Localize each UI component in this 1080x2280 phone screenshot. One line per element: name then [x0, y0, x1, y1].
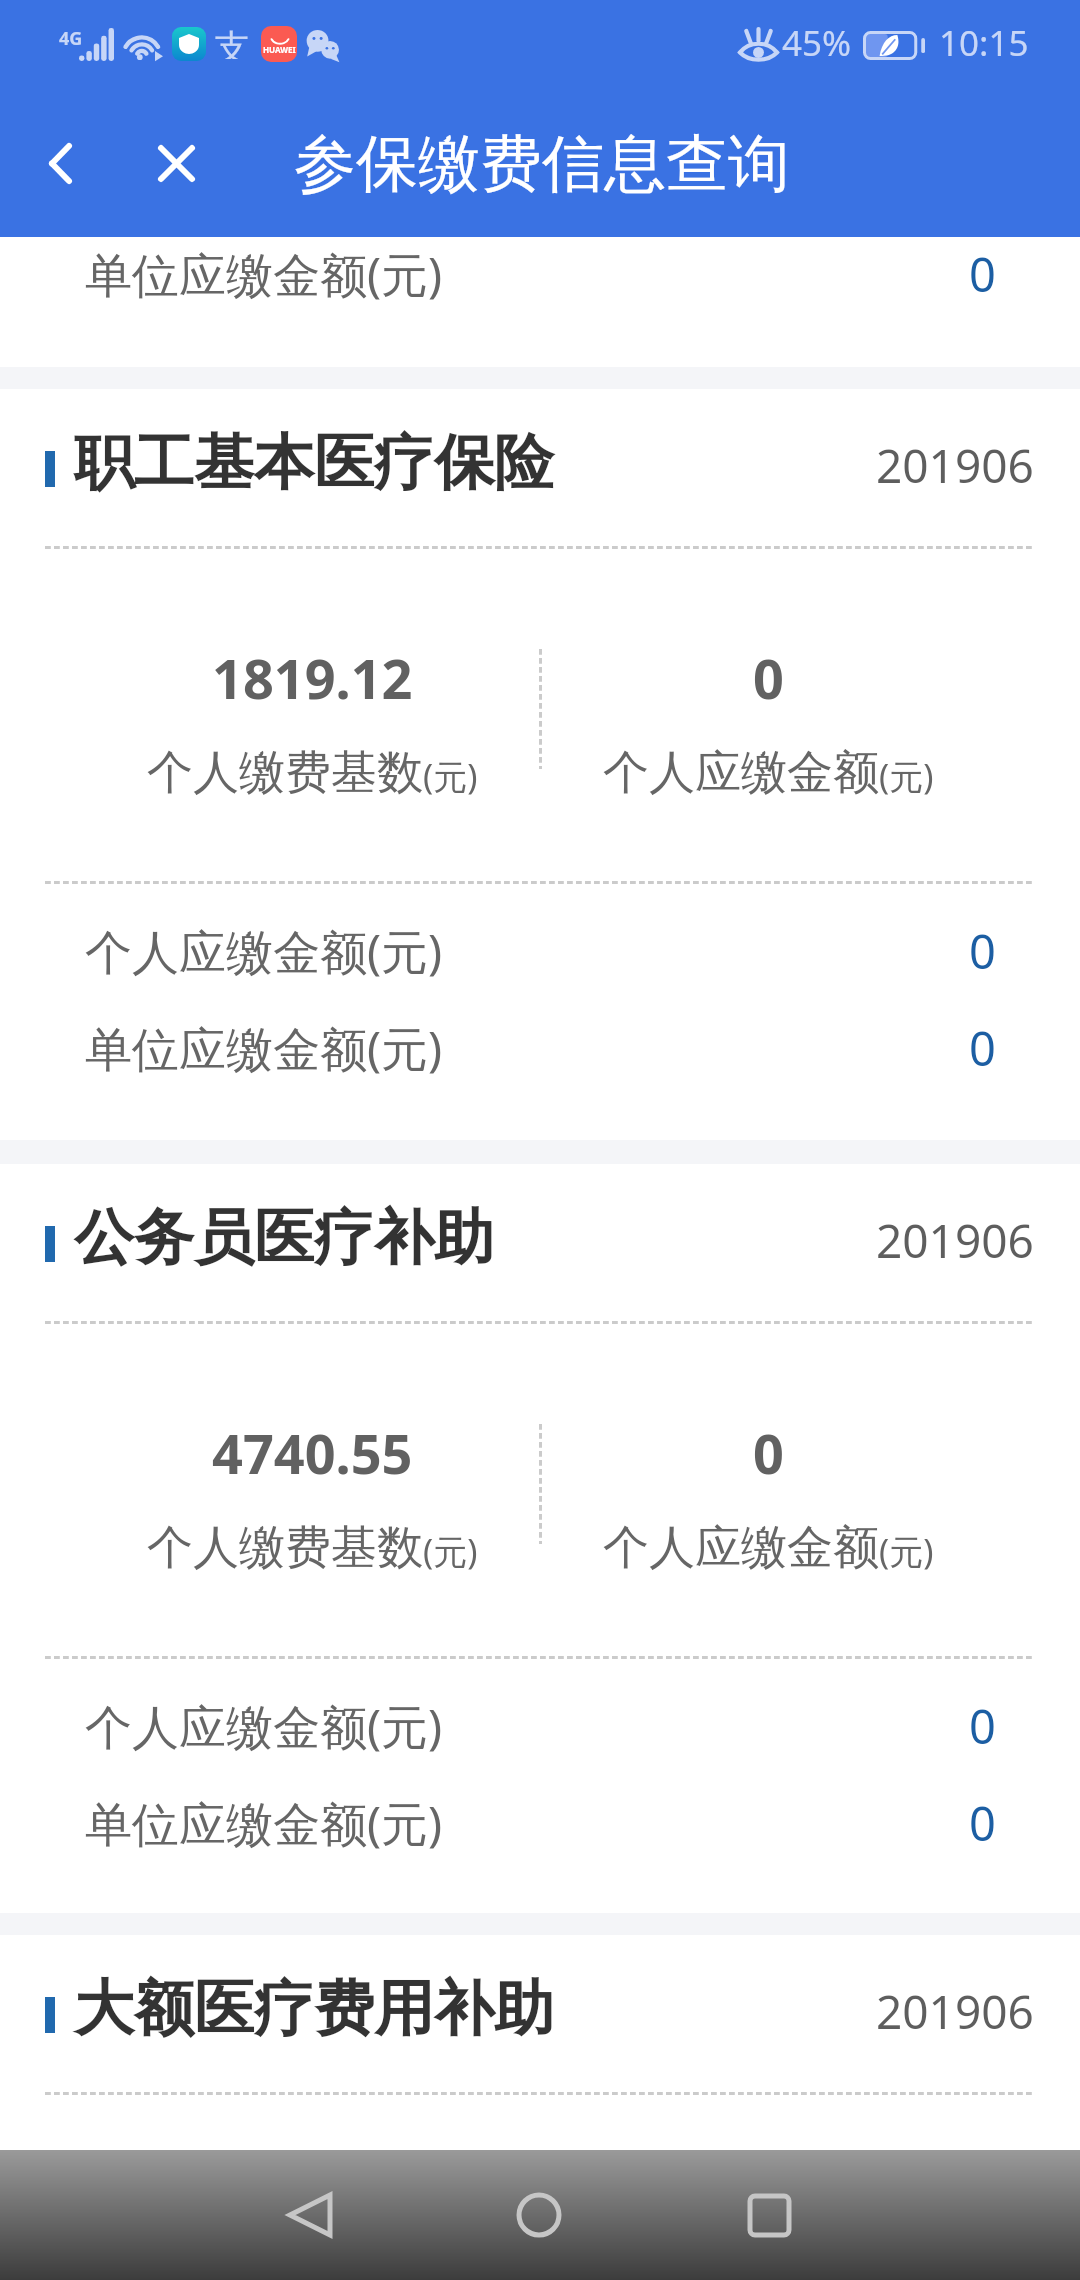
staticText: 45% — [782, 19, 852, 67]
staticText: 单位应缴金额(元) — [85, 1016, 443, 1080]
staticText: 个人应缴金额 — [603, 1519, 879, 1577]
button[interactable]: Recents — [704, 2150, 834, 2280]
staticText: 个人应缴金额(元) — [85, 1694, 443, 1758]
staticText: 个人缴费基数 — [147, 744, 423, 802]
staticText: 职工基本医疗保险 — [74, 425, 554, 501]
staticText: (元) — [423, 753, 478, 799]
staticText: 单位应缴金额(元) — [85, 242, 443, 306]
staticText: 0 — [969, 242, 996, 306]
staticText: 0 — [969, 919, 996, 983]
button[interactable]: 大额医疗费用补助 — [0, 1935, 1080, 2095]
button[interactable]: 单位应缴金额(元) — [85, 225, 996, 322]
staticText: 0 — [969, 1694, 996, 1758]
button[interactable]: Back — [0, 90, 120, 237]
staticText: 4G — [59, 26, 83, 51]
staticText: 个人缴费基数 — [147, 1519, 423, 1577]
staticText: 4740.55 — [212, 1416, 413, 1490]
staticText: 201906 — [876, 434, 1034, 497]
staticText: 0 — [753, 1416, 784, 1490]
staticText: 单位应缴金额(元) — [85, 1791, 443, 1855]
button[interactable]: Back — [245, 2150, 375, 2280]
staticText: 参保缴费信息查询 — [294, 125, 790, 203]
staticText: 201906 — [876, 1209, 1034, 1272]
button[interactable]: 单位应缴金额(元) — [85, 1774, 996, 1871]
staticText: 支 — [214, 25, 248, 59]
staticText: (元) — [879, 1528, 934, 1574]
staticText: 个人应缴金额 — [603, 744, 879, 802]
button[interactable]: 个人应缴金额(元) — [85, 1677, 996, 1774]
button[interactable]: 公务员医疗补助 — [0, 1164, 1080, 1324]
staticText: 201906 — [876, 1980, 1034, 2043]
button[interactable]: Home — [474, 2150, 604, 2280]
staticText: 10:15 — [939, 19, 1029, 67]
staticText: 大额医疗费用补助 — [74, 1971, 554, 2047]
staticText: 0 — [753, 641, 784, 715]
button[interactable]: 个人应缴金额(元) — [85, 902, 996, 999]
staticText: 1819.12 — [212, 641, 413, 715]
staticText: (元) — [423, 1528, 478, 1574]
staticText: 个人应缴金额(元) — [85, 919, 443, 983]
button[interactable]: Close — [120, 90, 232, 237]
staticText: 0 — [969, 1016, 996, 1080]
staticText: 0 — [969, 1791, 996, 1855]
staticText: HUAWEI — [263, 44, 296, 55]
button[interactable]: 职工基本医疗保险 — [0, 389, 1080, 549]
staticText: 公务员医疗补助 — [74, 1200, 494, 1276]
staticText: (元) — [879, 753, 934, 799]
button[interactable]: 单位应缴金额(元) — [85, 999, 996, 1096]
